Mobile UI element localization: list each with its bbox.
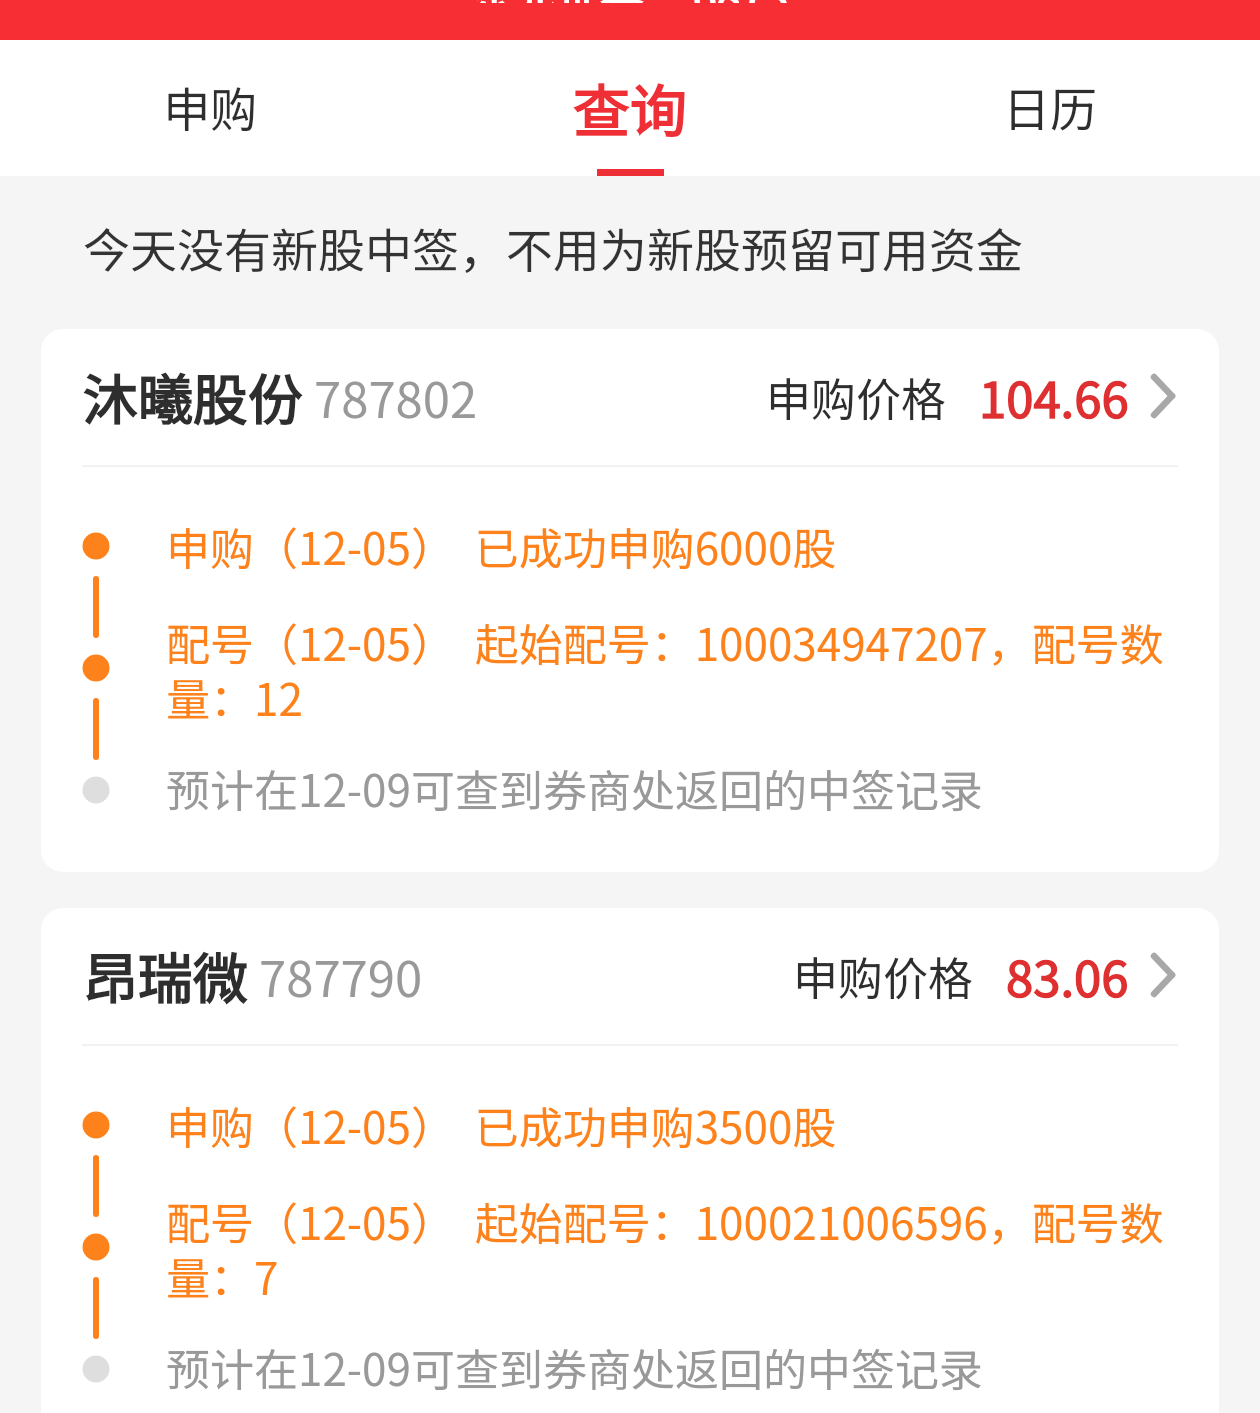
staticText: 申购 (163, 72, 257, 140)
other: Open stock detail (1151, 953, 1175, 997)
button[interactable]: 东北证券 **6873 (0, 0, 1260, 40)
staticText: 配号（12-05） 起始配号：100021006596，配号数量：7 (166, 1189, 1186, 1308)
button[interactable]: 昂瑞微 (41, 908, 1219, 1413)
staticText: 配号（12-05） 起始配号：100034947207，配号数量：12 (166, 610, 1186, 729)
other: Open stock detail (1151, 374, 1175, 418)
button[interactable]: 申购 (0, 40, 420, 176)
staticText: 787802 (314, 361, 478, 432)
staticText: 东北证券 **6873 (471, 0, 789, 3)
staticText: 今天没有新股中签，不用为新股预留可用资金 (83, 213, 1023, 281)
staticText: 104.66 (979, 361, 1129, 432)
staticText: 787790 (259, 940, 423, 1011)
button[interactable]: 沐曦股份 (41, 329, 1219, 872)
staticText: 昂瑞微 (83, 935, 249, 1015)
staticText: 申购（12-05） 已成功申购6000股 (166, 514, 837, 578)
button[interactable]: 查询 (420, 40, 840, 176)
staticText: 日历 (1003, 72, 1097, 140)
staticText: 预计在12-09可查到券商处返回的中签记录 (166, 1335, 983, 1399)
staticText: 83.06 (1006, 940, 1129, 1011)
button[interactable]: 日历 (840, 40, 1260, 176)
staticText: 沐曦股份 (83, 356, 304, 436)
staticText: 申购价格 (793, 943, 974, 1008)
staticText: 申购价格 (766, 364, 947, 429)
staticText: 申购（12-05） 已成功申购3500股 (166, 1093, 837, 1157)
staticText: 查询 (573, 66, 687, 146)
staticText: 预计在12-09可查到券商处返回的中签记录 (166, 756, 983, 820)
